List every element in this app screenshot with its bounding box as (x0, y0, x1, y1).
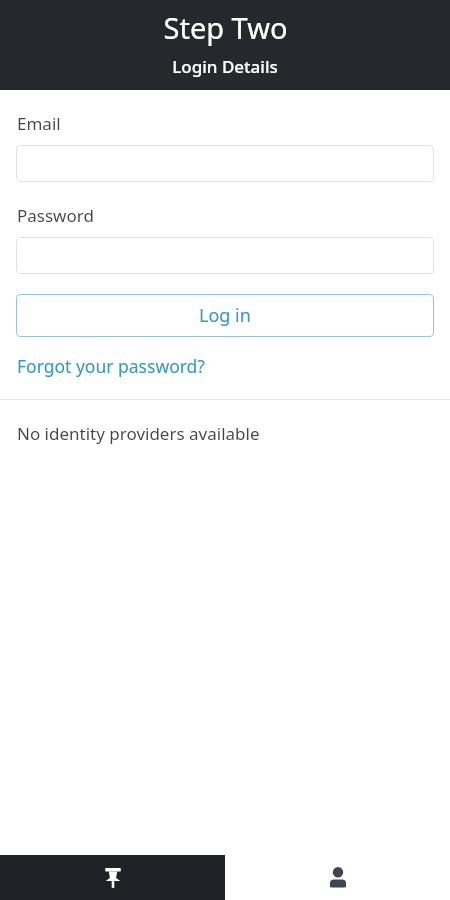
staticText: Email (17, 112, 61, 135)
button[interactable]: Account (225, 855, 450, 900)
staticText: Step Two (163, 8, 288, 47)
button[interactable] (16, 145, 434, 182)
staticText: No identity providers available (17, 422, 260, 445)
button[interactable]: Forgot your password? (16, 352, 206, 380)
staticText: Password (17, 204, 94, 227)
button[interactable]: Pinned (0, 855, 225, 900)
button[interactable] (16, 237, 434, 274)
staticText: Login Details (172, 55, 278, 78)
staticText: Log in (199, 303, 251, 328)
staticText: Forgot your password? (17, 354, 205, 378)
button[interactable]: Log in (16, 294, 434, 337)
